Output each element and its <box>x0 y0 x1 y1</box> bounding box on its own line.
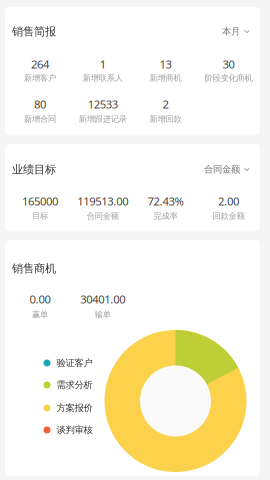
staticText: 119513.00 <box>77 193 128 209</box>
staticText: 输单 <box>95 309 111 320</box>
button[interactable]: 合同金额 <box>196 160 250 179</box>
staticText: 新增跟进记录 <box>79 114 127 124</box>
staticText: 业绩目标 <box>12 162 56 176</box>
staticText: 2.00 <box>218 193 239 209</box>
staticText: 30401.00 <box>80 291 125 307</box>
staticText: 本月 <box>222 26 240 37</box>
staticText: 阶段变化商机 <box>204 73 252 83</box>
staticText: 回款金额 <box>212 211 244 221</box>
button[interactable]: 本月 <box>214 22 250 41</box>
staticText: 新增合同 <box>24 114 56 124</box>
staticText: 264 <box>31 56 49 72</box>
staticText: 完成率 <box>154 211 178 221</box>
staticText: 目标 <box>32 211 48 221</box>
staticText: 合同金额 <box>204 164 240 175</box>
staticText: 新增回款 <box>150 114 182 124</box>
staticText: 合同金额 <box>87 211 119 221</box>
staticText: 验证客户 <box>56 357 92 369</box>
staticText: 谈判审核 <box>56 424 92 436</box>
staticText: 2 <box>163 96 169 112</box>
staticText: 1 <box>100 56 106 72</box>
staticText: 165000 <box>22 193 58 209</box>
staticText: 赢单 <box>32 309 48 320</box>
staticText: 新增客户 <box>24 73 56 83</box>
staticText: 新增联系人 <box>83 73 123 83</box>
staticText: 销售商机 <box>12 261 56 275</box>
staticText: 需求分析 <box>56 379 92 391</box>
staticText: 新增商机 <box>150 73 182 83</box>
staticText: 30 <box>222 56 234 72</box>
staticText: 0.00 <box>29 291 50 307</box>
staticText: 80 <box>34 96 46 112</box>
staticText: 13 <box>160 56 172 72</box>
staticText: 12533 <box>88 96 118 112</box>
staticText: 方案报价 <box>56 402 92 414</box>
staticText: 72.43% <box>148 193 184 209</box>
staticText: 销售简报 <box>12 24 56 38</box>
